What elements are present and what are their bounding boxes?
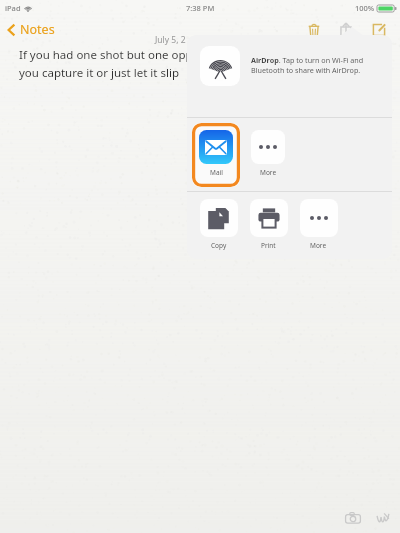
staticText: July 5, 2 xyxy=(155,34,186,46)
staticText: you capture it or just let it slip xyxy=(19,65,179,81)
button[interactable]: Delete xyxy=(298,16,330,44)
staticText: 7:38 PM xyxy=(186,3,215,13)
button[interactable]: AirDrop. Tap to turn on Wi-Fi and Blueto… xyxy=(187,35,392,117)
staticText: Mail xyxy=(210,168,223,177)
button[interactable]: Print xyxy=(246,199,291,250)
button[interactable]: More xyxy=(244,123,292,177)
staticText: iPad xyxy=(5,3,21,13)
button[interactable]: Copy xyxy=(196,199,241,250)
staticText: If you had one shot but one opportunity xyxy=(19,47,236,63)
button[interactable]: New note xyxy=(362,16,396,44)
button[interactable]: More xyxy=(296,199,341,250)
button[interactable]: Camera xyxy=(340,508,366,528)
button[interactable]: Mail xyxy=(192,123,240,187)
staticText: Copy xyxy=(211,241,227,250)
staticText: Notes xyxy=(20,21,55,38)
button[interactable]: Share xyxy=(330,16,362,44)
button[interactable]: Notes xyxy=(0,17,63,42)
staticText: AirDrop. Tap to turn on Wi-Fi and Blueto… xyxy=(251,55,382,75)
staticText: 100% xyxy=(355,3,375,13)
staticText: More xyxy=(310,241,327,250)
staticText: More xyxy=(260,168,277,177)
staticText: Print xyxy=(261,241,276,250)
button[interactable]: Handwriting xyxy=(372,508,394,528)
